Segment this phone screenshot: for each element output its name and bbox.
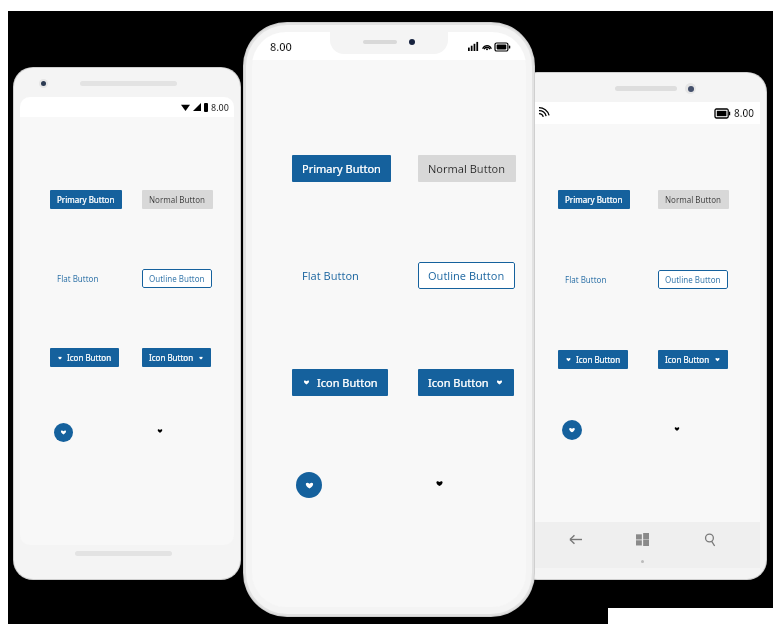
button[interactable]: Icon Button [558, 350, 628, 369]
button[interactable]: Start [625, 522, 659, 556]
button[interactable]: Outline Button [142, 269, 212, 288]
button[interactable]: Favorite [296, 472, 322, 498]
button[interactable]: Favorite [428, 472, 450, 494]
staticText: Outline Button [428, 268, 505, 283]
button[interactable]: Icon Button [418, 369, 514, 396]
staticText: Icon Button [665, 354, 710, 365]
staticText: Normal Button [149, 194, 206, 205]
staticText: Flat Button [302, 268, 359, 283]
button[interactable]: Flat Button [558, 270, 614, 289]
staticText: Primary Button [57, 194, 115, 205]
staticText: Normal Button [665, 194, 722, 205]
button[interactable]: Icon Button [50, 348, 119, 367]
button[interactable]: Flat Button [50, 269, 106, 288]
staticText: Icon Button [67, 352, 112, 363]
button[interactable]: Primary Button [558, 190, 630, 209]
button[interactable]: Primary Button [50, 190, 122, 209]
staticText: Outline Button [149, 273, 205, 284]
button[interactable]: Normal Button [142, 190, 213, 209]
button[interactable]: Favorite [562, 420, 582, 440]
staticText: Icon Button [428, 375, 489, 390]
staticText: Outline Button [665, 274, 721, 285]
button[interactable]: Flat Button [292, 262, 369, 289]
button[interactable]: Icon Button [142, 348, 211, 367]
button[interactable]: Favorite [152, 423, 168, 439]
button[interactable]: Back [558, 522, 592, 556]
button[interactable]: Primary Button [292, 155, 391, 182]
staticText: Primary Button [302, 161, 381, 176]
staticText: 8.00 [270, 39, 292, 54]
button[interactable]: Normal Button [658, 190, 729, 209]
button[interactable]: Search [693, 522, 727, 556]
staticText: Normal Button [428, 161, 506, 176]
staticText: Icon Button [149, 352, 194, 363]
button[interactable]: Normal Button [418, 155, 516, 182]
button[interactable]: Favorite [54, 423, 73, 442]
staticText: Primary Button [565, 194, 623, 205]
staticText: 8.00 [211, 101, 229, 113]
staticText: Flat Button [565, 274, 607, 285]
staticText: Icon Button [576, 354, 621, 365]
button[interactable]: Outline Button [418, 262, 515, 289]
staticText: 8.00 [734, 106, 754, 120]
button[interactable]: Favorite [668, 420, 685, 437]
staticText: Flat Button [57, 273, 99, 284]
staticText: Icon Button [317, 375, 378, 390]
button[interactable]: Icon Button [292, 369, 388, 396]
button[interactable]: Icon Button [658, 350, 728, 369]
button[interactable]: Outline Button [658, 270, 728, 289]
